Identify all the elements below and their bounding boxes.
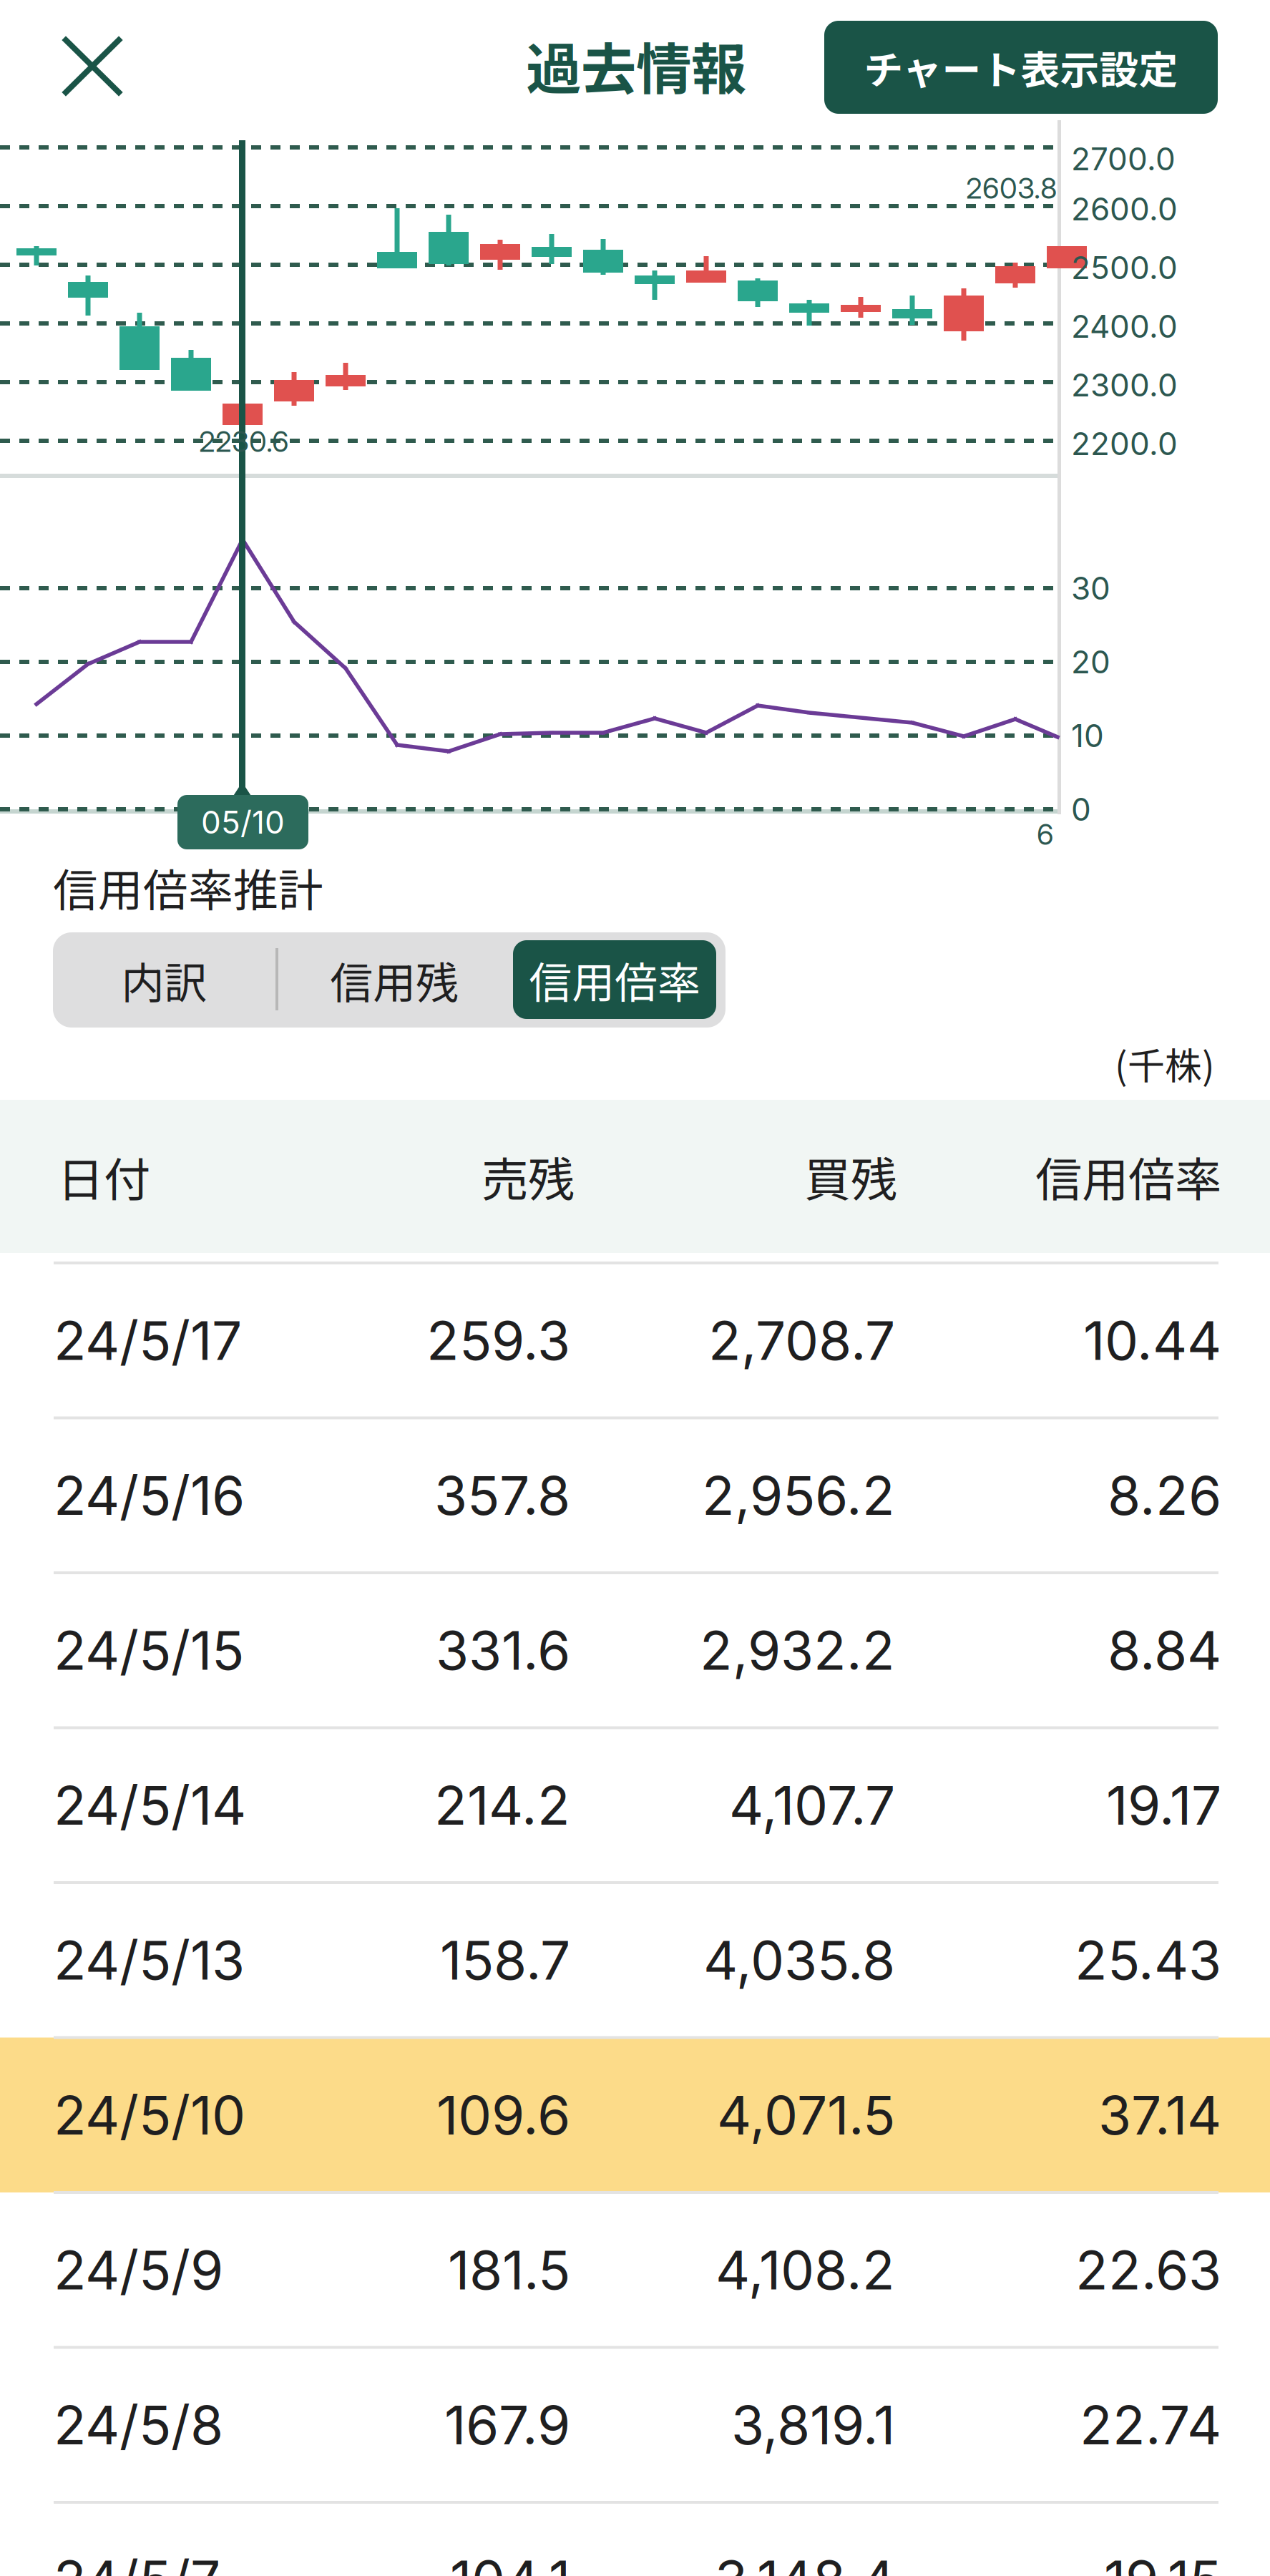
staticText: 22.74 [1080, 2393, 1221, 2457]
staticText: 2700.0 [1071, 140, 1176, 178]
staticText: 109.6 [436, 2083, 570, 2147]
staticText: 4,107.7 [729, 1773, 895, 1837]
staticText: 2400.0 [1071, 307, 1178, 345]
button[interactable]: 24/5/17 [0, 1263, 1270, 1418]
button[interactable]: 24/5/7 [0, 2502, 1270, 2576]
staticText: 24/5/10 [54, 2083, 245, 2147]
button[interactable]: Close [40, 16, 142, 114]
staticText: 25.43 [1075, 1928, 1221, 1992]
staticText: 30 [1071, 569, 1110, 607]
button[interactable]: 信用残 [53, 932, 290, 1028]
staticText: (千株) [1115, 1036, 1215, 1090]
staticText: 0 [1071, 790, 1091, 828]
staticText: 259.3 [426, 1308, 570, 1373]
staticText: 24/5/9 [54, 2238, 223, 2302]
staticText: 331.6 [436, 1618, 570, 1683]
staticText: 37.14 [1098, 2083, 1221, 2147]
staticText: 4,035.8 [703, 1928, 895, 1992]
staticText: 24/5/7 [54, 2547, 220, 2576]
staticText: 2200.0 [1071, 425, 1178, 463]
button[interactable]: 24/5/16 [0, 1418, 1270, 1573]
staticText: 05/10 [201, 803, 285, 841]
staticText: 3,819.1 [731, 2393, 895, 2457]
button[interactable]: 内訳 [53, 932, 275, 1028]
staticText: 売残 [482, 1143, 575, 1210]
staticText: チャート表示設定 [864, 39, 1178, 96]
staticText: 19.17 [1106, 1773, 1221, 1837]
staticText: 24/5/14 [54, 1773, 246, 1837]
staticText: 3,148.4 [715, 2547, 895, 2576]
staticText: 24/5/17 [54, 1308, 242, 1373]
staticText: 24/5/8 [54, 2393, 223, 2457]
staticText: 104.1 [450, 2547, 570, 2576]
staticText: 4,071.5 [717, 2083, 895, 2147]
button[interactable]: 24/5/13 [0, 1883, 1270, 2038]
staticText: 24/5/13 [54, 1928, 245, 1992]
staticText: 8.84 [1108, 1618, 1221, 1683]
staticText: 24/5/15 [54, 1618, 244, 1683]
button[interactable]: 24/5/10 [0, 2038, 1270, 2192]
staticText: 2603.8 [966, 171, 1057, 206]
staticText: 20 [1071, 643, 1110, 681]
staticText: 4,108.2 [715, 2238, 895, 2302]
staticText: 2230.6 [199, 424, 289, 459]
button[interactable]: 24/5/14 [0, 1728, 1270, 1883]
button[interactable]: 24/5/15 [0, 1573, 1270, 1728]
button[interactable]: チャート表示設定 [824, 21, 1218, 114]
staticText: 信用倍率 [1035, 1143, 1221, 1210]
staticText: 2,708.7 [708, 1308, 895, 1373]
staticText: 214.2 [434, 1773, 570, 1837]
staticText: 357.8 [434, 1463, 570, 1528]
staticText: 2500.0 [1071, 249, 1178, 287]
staticText: 24/5/16 [54, 1463, 245, 1528]
staticText: 10 [1071, 717, 1104, 755]
staticText: 167.9 [444, 2393, 570, 2457]
staticText: 19.15 [1104, 2547, 1221, 2576]
staticText: 過去情報 [526, 25, 746, 105]
staticText: 信用残 [330, 949, 459, 1011]
staticText: 信用倍率 [529, 949, 700, 1011]
staticText: 日付 [57, 1143, 150, 1210]
staticText: 181.5 [448, 2238, 570, 2302]
button[interactable]: 信用倍率 [53, 932, 256, 1011]
staticText: 2,932.2 [700, 1618, 895, 1683]
staticText: 8.26 [1108, 1463, 1221, 1528]
button[interactable]: 24/5/9 [0, 2192, 1270, 2347]
button[interactable]: 24/5/8 [0, 2347, 1270, 2502]
staticText: 6 [1037, 817, 1054, 852]
staticText: 2,956.2 [702, 1463, 895, 1528]
staticText: 2600.0 [1071, 190, 1178, 228]
staticText: 買残 [804, 1143, 897, 1210]
staticText: 2300.0 [1071, 366, 1178, 404]
staticText: 信用倍率推計 [53, 855, 323, 920]
staticText: 22.63 [1075, 2238, 1221, 2302]
staticText: 内訳 [121, 949, 207, 1011]
staticText: 10.44 [1083, 1308, 1221, 1373]
staticText: 158.7 [440, 1928, 570, 1992]
